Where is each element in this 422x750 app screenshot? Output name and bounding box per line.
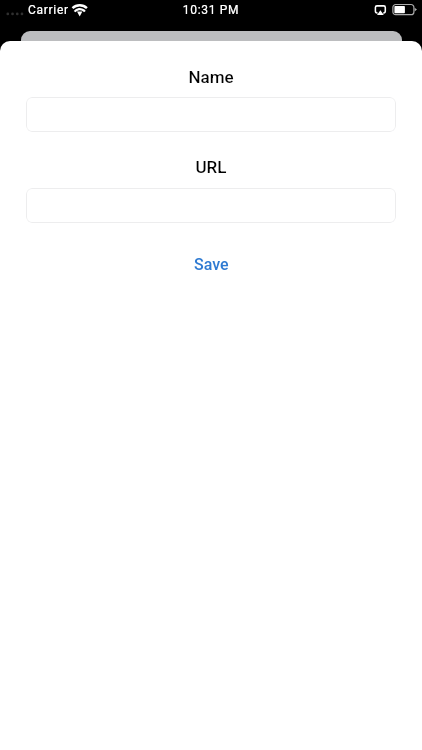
staticText: URL — [0, 157, 422, 177]
staticText: 10:31 PM — [0, 3, 422, 17]
other: Battery — [391, 3, 418, 15]
button[interactable]: URL input field — [26, 188, 396, 223]
other: Wi-Fi — [72, 4, 88, 17]
staticText: Name — [0, 67, 422, 87]
button[interactable]: Save — [0, 255, 422, 275]
staticText: Save — [194, 255, 229, 274]
other: AirPlay — [373, 4, 387, 16]
other: Signal strength — [4, 10, 26, 18]
staticText: Carrier — [28, 3, 69, 17]
button[interactable]: Name input field — [26, 97, 396, 132]
